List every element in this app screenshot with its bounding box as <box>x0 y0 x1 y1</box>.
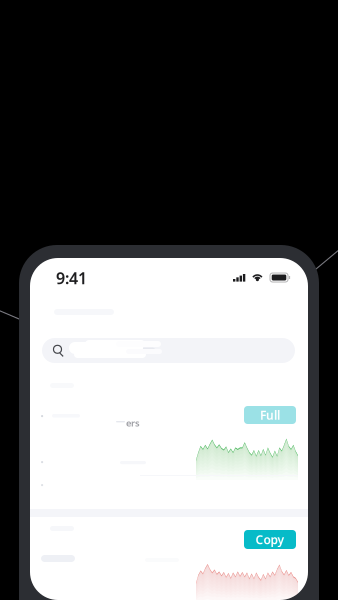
staticText: Copy <box>255 531 284 547</box>
button[interactable]: Full <box>244 406 296 424</box>
button[interactable]: Copy <box>244 530 296 549</box>
staticText: ers <box>126 417 140 429</box>
staticText: 9:41 <box>56 267 87 289</box>
staticText: Full <box>260 407 280 423</box>
